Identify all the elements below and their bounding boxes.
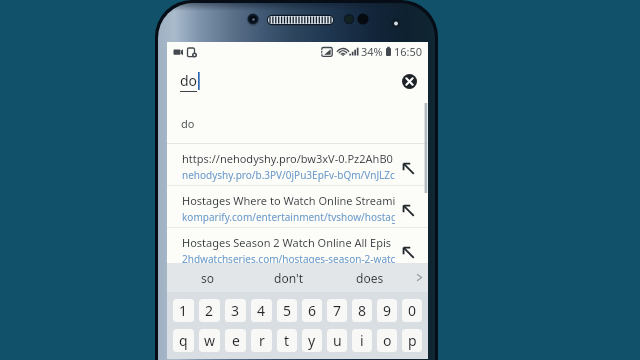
staticText: 8 [358, 301, 367, 320]
staticText: q [179, 331, 188, 350]
button[interactable]: 0 [402, 299, 422, 322]
staticText: 34% [361, 44, 383, 59]
button[interactable]: q [173, 329, 194, 352]
staticText: so [201, 270, 215, 286]
staticText: w [204, 331, 216, 350]
staticText: 3 [231, 301, 240, 320]
staticText: o [383, 331, 392, 350]
staticText: 16:50 [394, 44, 423, 59]
staticText: 1 [179, 301, 188, 320]
button[interactable]: e [225, 329, 246, 352]
button[interactable]: Hostages Where to Watch Online Streami [167, 186, 428, 228]
staticText: don't [274, 270, 303, 286]
staticText: 2 [205, 301, 214, 320]
button[interactable]: 1 [173, 299, 194, 322]
staticText: https://nehodyshy.pro/bw3xV-0.Pz2AhB0 [182, 151, 393, 166]
button[interactable]: so [167, 263, 248, 292]
staticText: y [308, 331, 316, 350]
button[interactable]: Insert suggestion [399, 159, 417, 177]
staticText: t [284, 331, 290, 350]
staticText: e [232, 331, 240, 350]
staticText: 6 [308, 301, 317, 320]
staticText: 2hdwatchseries.com/hostages-season-2-wat… [182, 252, 395, 266]
button[interactable]: t [277, 329, 297, 352]
button[interactable]: does [329, 263, 410, 292]
button[interactable]: y [302, 329, 322, 352]
button[interactable]: u [327, 329, 347, 352]
staticText: i [360, 331, 364, 350]
button[interactable]: o [377, 329, 397, 352]
button[interactable]: Insert suggestion [399, 243, 417, 261]
staticText: p [408, 331, 417, 350]
button[interactable]: w [199, 329, 220, 352]
staticText: u [333, 331, 342, 350]
staticText: do [180, 71, 198, 90]
staticText: Hostages Season 2 Watch Online All Epis [182, 235, 392, 250]
button[interactable]: 2 [199, 299, 220, 322]
button[interactable]: https://nehodyshy.pro/bw3xV-0.Pz2AhB0 [167, 144, 428, 186]
staticText: nehodyshy.pro/b.3PV/0jPu3EpFv-bQm/VnJLZc [182, 168, 395, 182]
button[interactable]: i [352, 329, 372, 352]
button[interactable]: 9 [377, 299, 397, 322]
button[interactable]: p [402, 329, 422, 352]
button[interactable]: 6 [302, 299, 322, 322]
staticText: 9 [383, 301, 392, 320]
staticText: komparify.com/entertainment/tvshow/hosta… [182, 210, 395, 224]
button[interactable]: do [167, 60, 428, 102]
staticText: r [259, 331, 265, 350]
staticText: does [356, 270, 384, 286]
button[interactable]: don't [248, 263, 329, 292]
staticText: 5 [283, 301, 292, 320]
button[interactable]: 8 [352, 299, 372, 322]
staticText: Hostages Where to Watch Online Streami [182, 193, 395, 208]
button[interactable]: Insert suggestion [399, 201, 417, 219]
button[interactable]: 3 [225, 299, 246, 322]
button[interactable]: Hostages Season 2 Watch Online All Epis [167, 228, 428, 270]
button[interactable]: More suggestions [410, 263, 428, 292]
staticText: 0 [408, 301, 417, 320]
staticText: 4 [257, 301, 266, 320]
button[interactable]: Clear query [398, 70, 420, 92]
button[interactable]: do [167, 102, 428, 144]
button[interactable]: 7 [327, 299, 347, 322]
staticText: do [181, 116, 195, 131]
button[interactable]: 5 [277, 299, 297, 322]
button[interactable]: r [251, 329, 272, 352]
staticText: 7 [333, 301, 342, 320]
button[interactable]: 4 [251, 299, 272, 322]
